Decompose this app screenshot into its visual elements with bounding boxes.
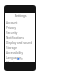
staticText: Languages: [6, 56, 22, 60]
staticText: Security: [6, 31, 18, 35]
staticText: Settings: [6, 14, 35, 18]
staticText: Account: [6, 21, 18, 25]
staticText: Privacy: [6, 26, 17, 30]
staticText: Storage: [6, 46, 17, 50]
staticText: Accessibility: [6, 51, 23, 55]
button[interactable]: Settings: [5, 13, 35, 62]
staticText: Notifications: [6, 36, 24, 40]
staticText: About: [6, 61, 15, 62]
staticText: Display and sound: [6, 41, 32, 45]
